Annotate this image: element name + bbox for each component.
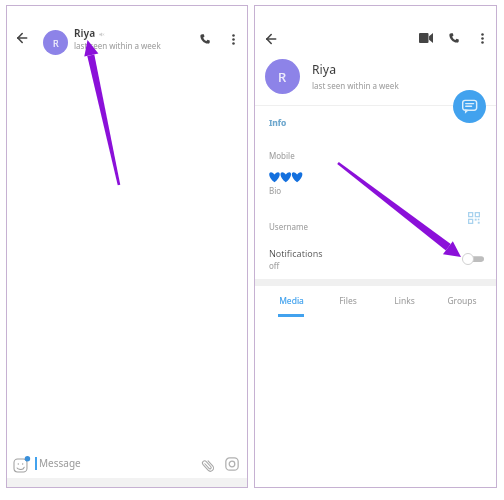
button[interactable]: Notifications [254,243,497,277]
button[interactable]: Camera [223,455,241,473]
button[interactable]: Emoji [12,454,32,474]
staticText: R [53,37,59,49]
button[interactable]: Riya [74,26,161,51]
staticText: last seen within a week [312,80,399,91]
staticText: Links [394,295,415,307]
button[interactable]: Video call [416,28,436,48]
staticText: Files [339,295,357,307]
button[interactable]: Links [376,291,433,325]
staticText: Groups [447,295,477,307]
button[interactable]: Files [319,291,376,325]
button[interactable]: Call [444,28,464,48]
button[interactable]: Back [261,29,281,49]
button[interactable]: QR code [463,207,485,229]
staticText: off [269,260,280,271]
button[interactable]: Back [12,28,32,48]
button[interactable]: Media [262,291,319,325]
staticText: Riya [74,26,96,40]
button[interactable]: Notifications toggle [462,253,484,265]
button[interactable]: Attach [198,455,218,475]
button[interactable]: R [43,30,68,55]
button[interactable]: Groups [433,291,490,325]
staticText: last seen within a week [74,40,161,51]
button[interactable]: Message [39,456,81,470]
button[interactable]: R [265,59,300,94]
staticText: Riya [312,61,337,77]
button[interactable]: Riya [312,61,399,91]
button[interactable]: More options [224,30,242,48]
button[interactable]: More options [473,29,491,47]
staticText: Bio [269,185,282,196]
staticText: Notifications [269,247,323,259]
button[interactable]: Info [269,117,287,129]
button[interactable]: Call [194,28,215,49]
staticText: Mobile [269,150,295,161]
staticText: Username [269,221,308,232]
button[interactable]: Send message [453,90,486,123]
staticText: Media [279,295,304,307]
staticText: R [278,68,287,86]
